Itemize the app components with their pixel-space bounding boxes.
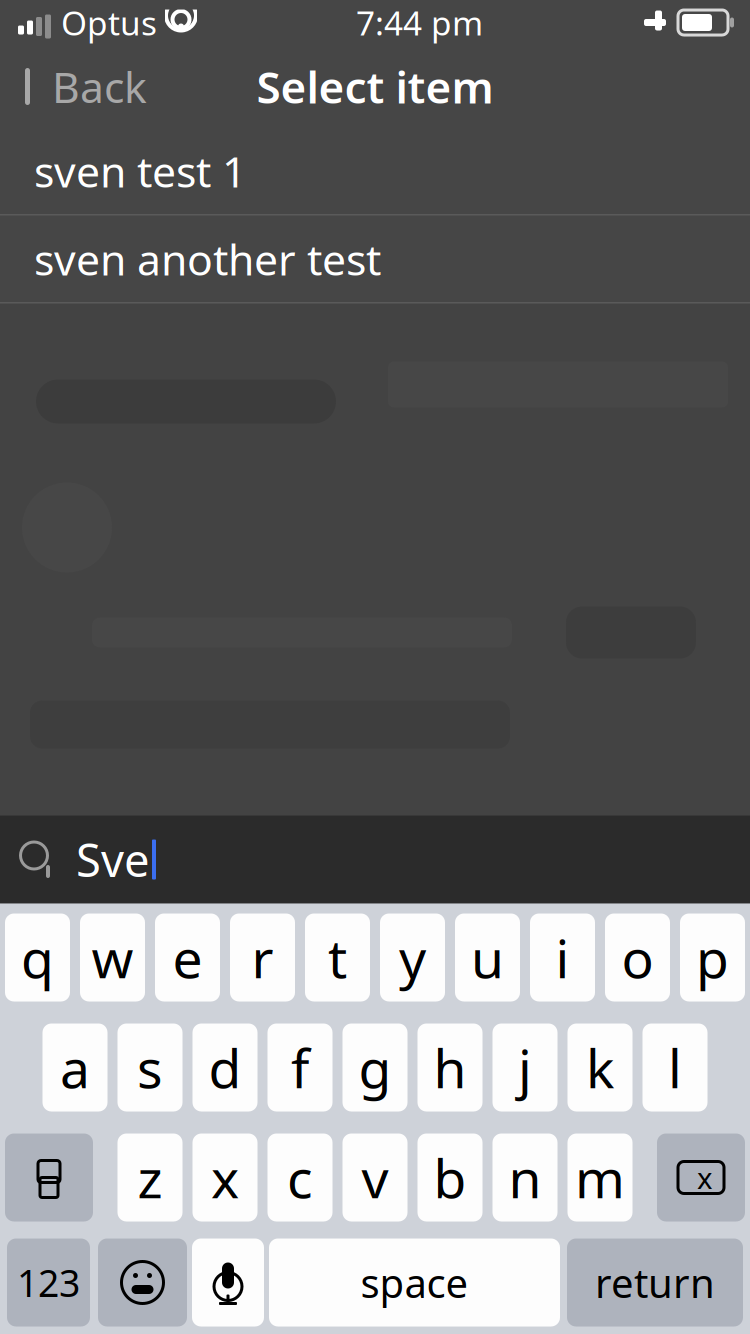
- button[interactable]: d: [192, 1023, 257, 1111]
- button[interactable]: v: [342, 1133, 407, 1221]
- staticText: v: [361, 1142, 388, 1213]
- button[interactable]: sven another test: [0, 215, 750, 302]
- button[interactable]: sven test 1: [0, 127, 750, 214]
- staticText: h: [433, 1032, 466, 1103]
- staticText: x: [697, 1158, 713, 1197]
- staticText: t: [328, 922, 347, 993]
- button[interactable]: h: [417, 1023, 482, 1111]
- button[interactable]: Dictation: [192, 1238, 264, 1326]
- button[interactable]: o: [605, 913, 670, 1001]
- button[interactable]: t: [305, 913, 370, 1001]
- staticText: l: [668, 1032, 682, 1103]
- button[interactable]: m: [567, 1133, 632, 1221]
- staticText: d: [208, 1032, 241, 1103]
- staticText: y: [399, 922, 426, 993]
- staticText: s: [137, 1032, 163, 1103]
- button[interactable]: space: [269, 1238, 560, 1326]
- button[interactable]: k: [567, 1023, 632, 1111]
- button[interactable]: Sve: [0, 815, 750, 903]
- button[interactable]: n: [492, 1133, 557, 1221]
- button[interactable]: p: [680, 913, 745, 1001]
- staticText: w: [91, 922, 133, 993]
- staticText: Back: [52, 58, 147, 115]
- button[interactable]: g: [342, 1023, 407, 1111]
- staticText: a: [60, 1032, 90, 1103]
- button[interactable]: w: [80, 913, 145, 1001]
- button[interactable]: a: [42, 1023, 107, 1111]
- button[interactable]: l: [642, 1023, 707, 1111]
- staticText: 7:44 pm: [356, 0, 483, 45]
- staticText: r: [251, 922, 273, 993]
- button[interactable]: e: [155, 913, 220, 1001]
- button[interactable]: u: [455, 913, 520, 1001]
- staticText: g: [358, 1032, 391, 1103]
- staticText: j: [518, 1032, 532, 1103]
- button[interactable]: c: [267, 1133, 332, 1221]
- staticText: x: [211, 1142, 239, 1213]
- staticText: k: [586, 1032, 614, 1103]
- button[interactable]: Back: [0, 48, 147, 125]
- button[interactable]: r: [230, 913, 295, 1001]
- staticText: e: [172, 922, 202, 993]
- staticText: u: [471, 922, 504, 993]
- staticText: 123: [17, 1258, 80, 1307]
- button[interactable]: return: [567, 1238, 743, 1326]
- staticText: q: [21, 922, 54, 993]
- button[interactable]: f: [267, 1023, 332, 1111]
- button[interactable]: b: [417, 1133, 482, 1221]
- staticText: sven another test: [34, 231, 381, 287]
- button[interactable]: Delete: [657, 1133, 745, 1221]
- staticText: Sve: [76, 829, 150, 890]
- staticText: f: [291, 1032, 309, 1103]
- staticText: return: [595, 1256, 715, 1309]
- button[interactable]: Shift: [5, 1133, 93, 1221]
- staticText: c: [287, 1142, 313, 1213]
- button[interactable]: q: [5, 913, 70, 1001]
- button[interactable]: 123: [7, 1238, 90, 1326]
- staticText: m: [575, 1142, 625, 1213]
- button[interactable]: y: [380, 913, 445, 1001]
- button[interactable]: j: [492, 1023, 557, 1111]
- staticText: p: [696, 922, 729, 993]
- staticText: z: [137, 1142, 162, 1213]
- staticText: o: [621, 922, 653, 993]
- staticText: sven test 1: [34, 143, 246, 199]
- staticText: Optus: [61, 0, 157, 45]
- button[interactable]: s: [117, 1023, 182, 1111]
- staticText: b: [433, 1142, 466, 1213]
- staticText: space: [360, 1256, 468, 1309]
- button[interactable]: Emoji: [98, 1238, 187, 1326]
- button[interactable]: i: [530, 913, 595, 1001]
- staticText: i: [555, 922, 569, 993]
- button[interactable]: x: [192, 1133, 257, 1221]
- staticText: n: [508, 1142, 541, 1213]
- staticText: Select item: [256, 57, 493, 116]
- button[interactable]: z: [117, 1133, 182, 1221]
